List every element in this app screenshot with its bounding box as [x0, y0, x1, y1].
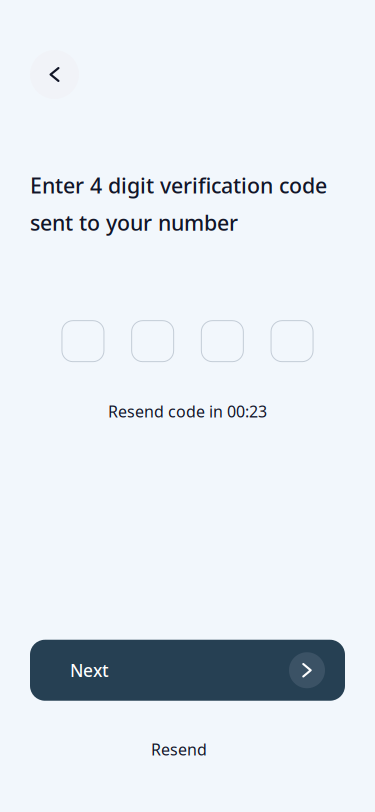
button[interactable]: Next	[30, 640, 345, 701]
button[interactable]: Resend	[0, 739, 375, 760]
button[interactable]: Digit 2	[132, 321, 174, 362]
staticText: Enter 4 digit verification code	[30, 171, 327, 199]
staticText: Next	[70, 659, 109, 682]
button[interactable]: Digit 4	[271, 321, 313, 362]
staticText: Resend	[151, 739, 207, 760]
button[interactable]: Digit 3	[201, 321, 243, 362]
staticText: Resend code in 00:23	[108, 401, 267, 422]
staticText: sent to your number	[30, 208, 238, 237]
button[interactable]: Back	[30, 50, 79, 99]
button[interactable]: Digit 1	[62, 321, 104, 362]
